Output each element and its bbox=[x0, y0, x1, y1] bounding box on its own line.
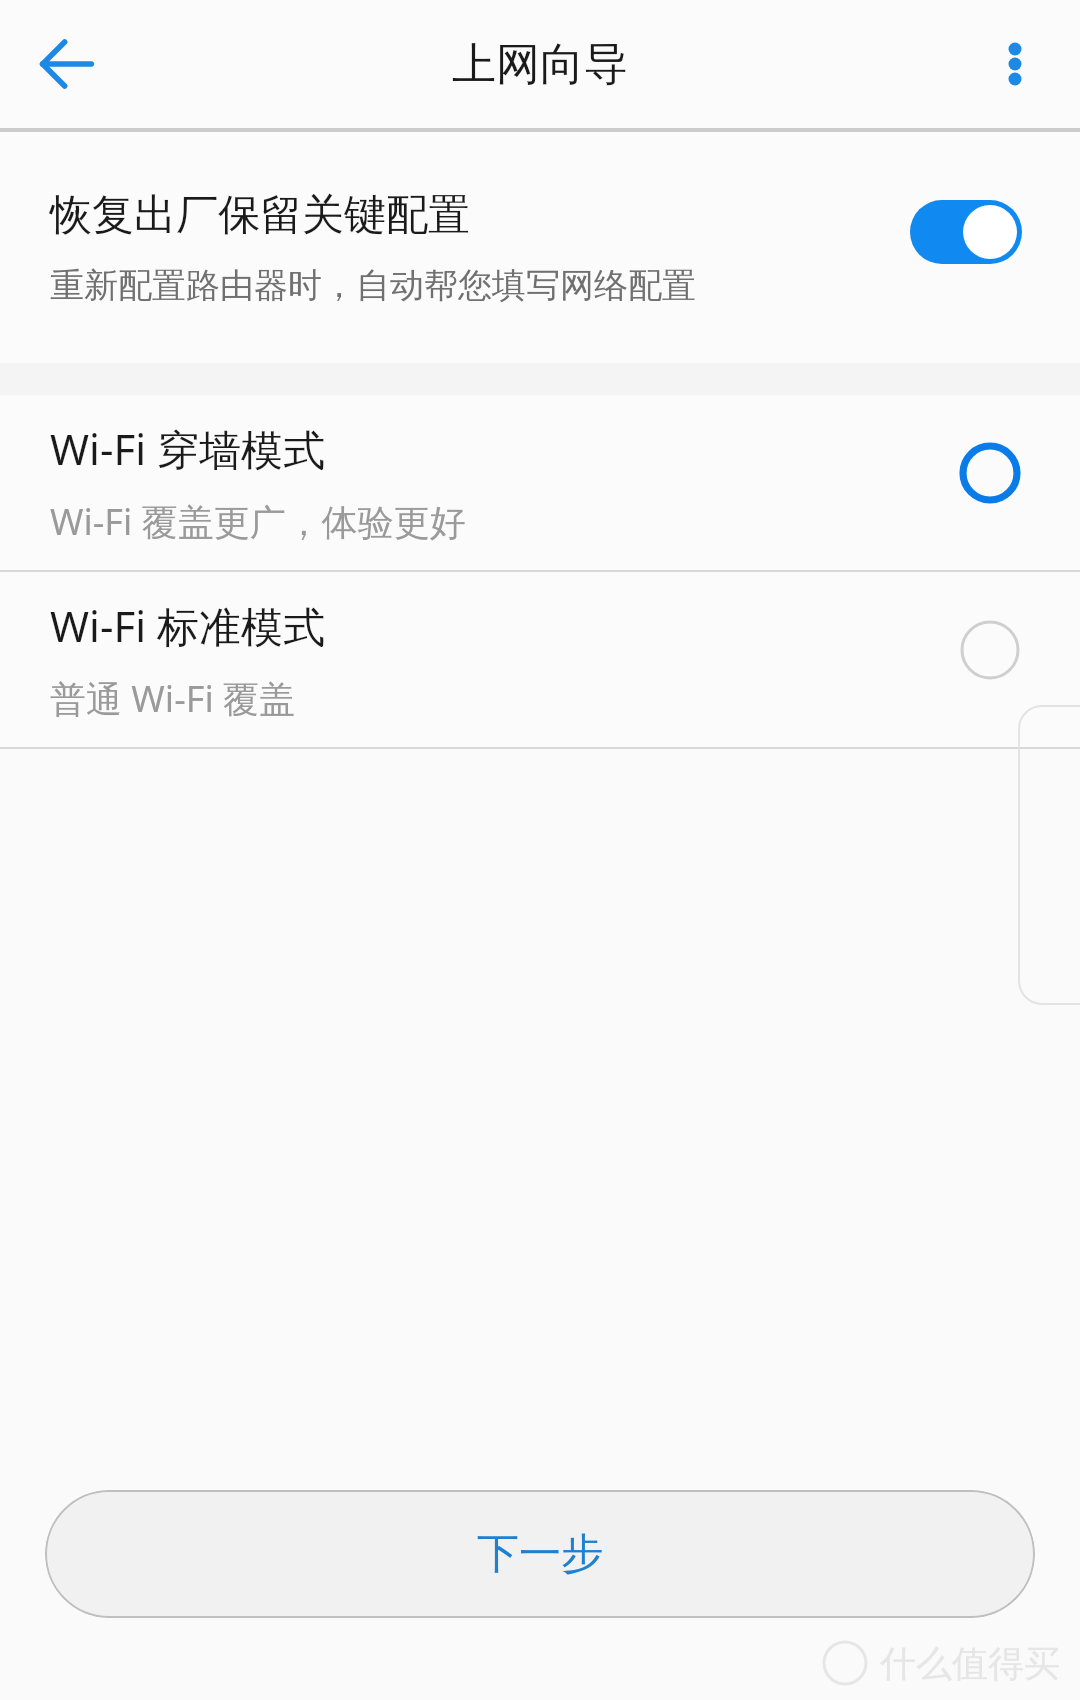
button[interactable]: 恢复出厂保留关键配置 bbox=[0, 132, 1080, 363]
button[interactable]: Back bbox=[14, 11, 120, 117]
button[interactable]: Wi-Fi 穿墙模式 bbox=[0, 395, 1080, 570]
button[interactable]: Wi-Fi 穿墙模式 selected bbox=[950, 433, 1030, 513]
staticText: 重新配置路由器时，自动帮您填写网络配置 bbox=[50, 264, 696, 307]
staticText: Wi-Fi 标准模式 bbox=[50, 597, 325, 654]
staticText: 恢复出厂保留关键配置 bbox=[50, 189, 470, 242]
staticText: 上网向导 bbox=[452, 37, 628, 92]
staticText: 什么值得买 bbox=[880, 1641, 1060, 1686]
button[interactable]: Wi-Fi 标准模式 bbox=[0, 572, 1080, 747]
staticText: Wi-Fi 穿墙模式 bbox=[50, 420, 325, 477]
staticText: Wi-Fi 覆盖更广，体验更好 bbox=[50, 497, 466, 546]
button[interactable]: 下一步 bbox=[45, 1490, 1035, 1618]
staticText: 下一步 bbox=[477, 1528, 603, 1581]
button[interactable]: More options bbox=[962, 11, 1068, 117]
button[interactable]: Wi-Fi 标准模式 not selected bbox=[950, 610, 1030, 690]
staticText: 普通 Wi-Fi 覆盖 bbox=[50, 674, 296, 723]
button[interactable]: Keep key configuration, on bbox=[910, 200, 1022, 264]
